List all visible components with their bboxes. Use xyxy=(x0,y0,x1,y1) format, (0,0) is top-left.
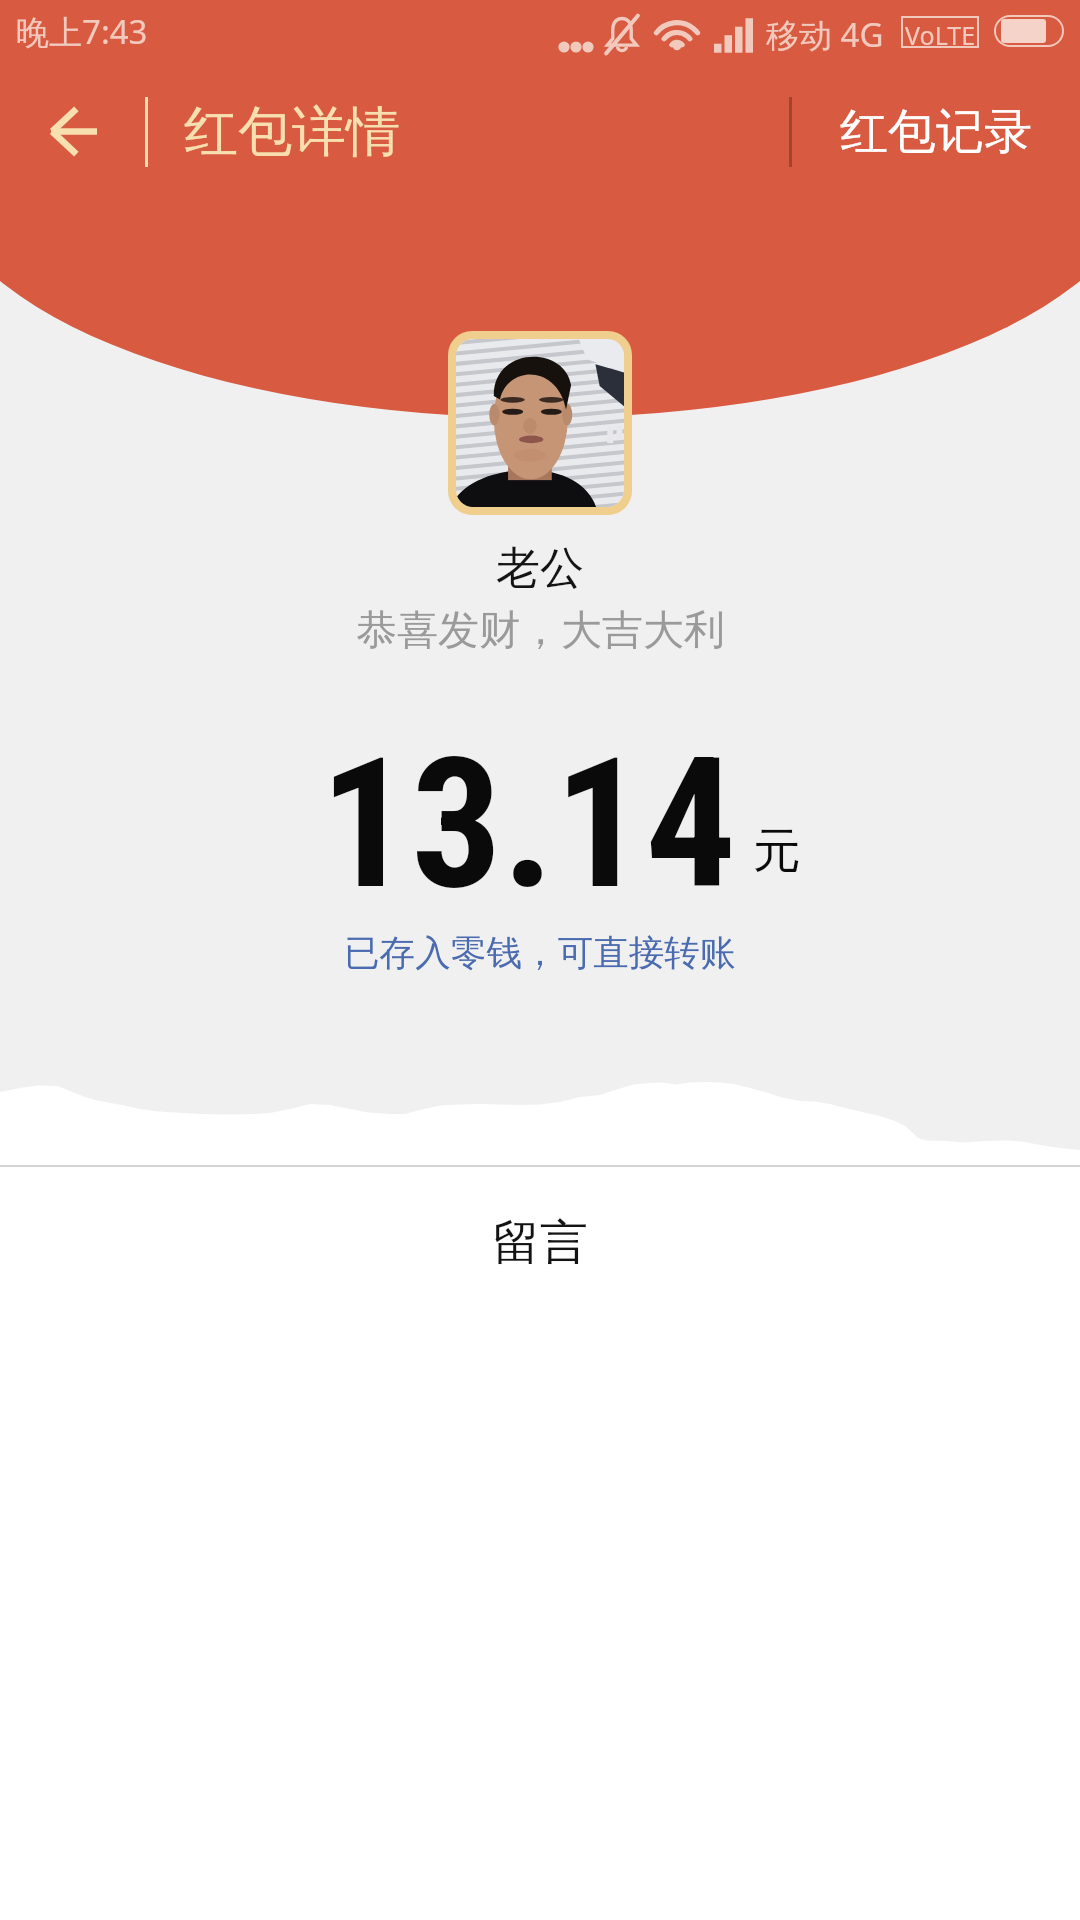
staticText: 13.14 xyxy=(320,719,737,930)
button[interactable]: Back xyxy=(0,62,145,202)
button[interactable]: Sender avatar xyxy=(448,331,632,515)
staticText: 老公 xyxy=(496,541,584,596)
staticText: 元 xyxy=(753,821,801,881)
button[interactable]: 留言 xyxy=(0,1168,1080,1288)
staticText: 留言 xyxy=(492,1213,588,1273)
staticText: 已存入零钱，可直接转账 xyxy=(344,931,736,976)
staticText: VoLTE xyxy=(905,18,976,46)
button[interactable]: 红包记录 xyxy=(792,62,1080,202)
staticText: 移动 4G xyxy=(766,12,884,57)
staticText: 红包记录 xyxy=(840,102,1032,162)
staticText: 红包详情 xyxy=(184,98,400,166)
staticText: 恭喜发财，大吉大利 xyxy=(356,605,725,657)
staticText: 晚上7:43 xyxy=(16,9,148,54)
